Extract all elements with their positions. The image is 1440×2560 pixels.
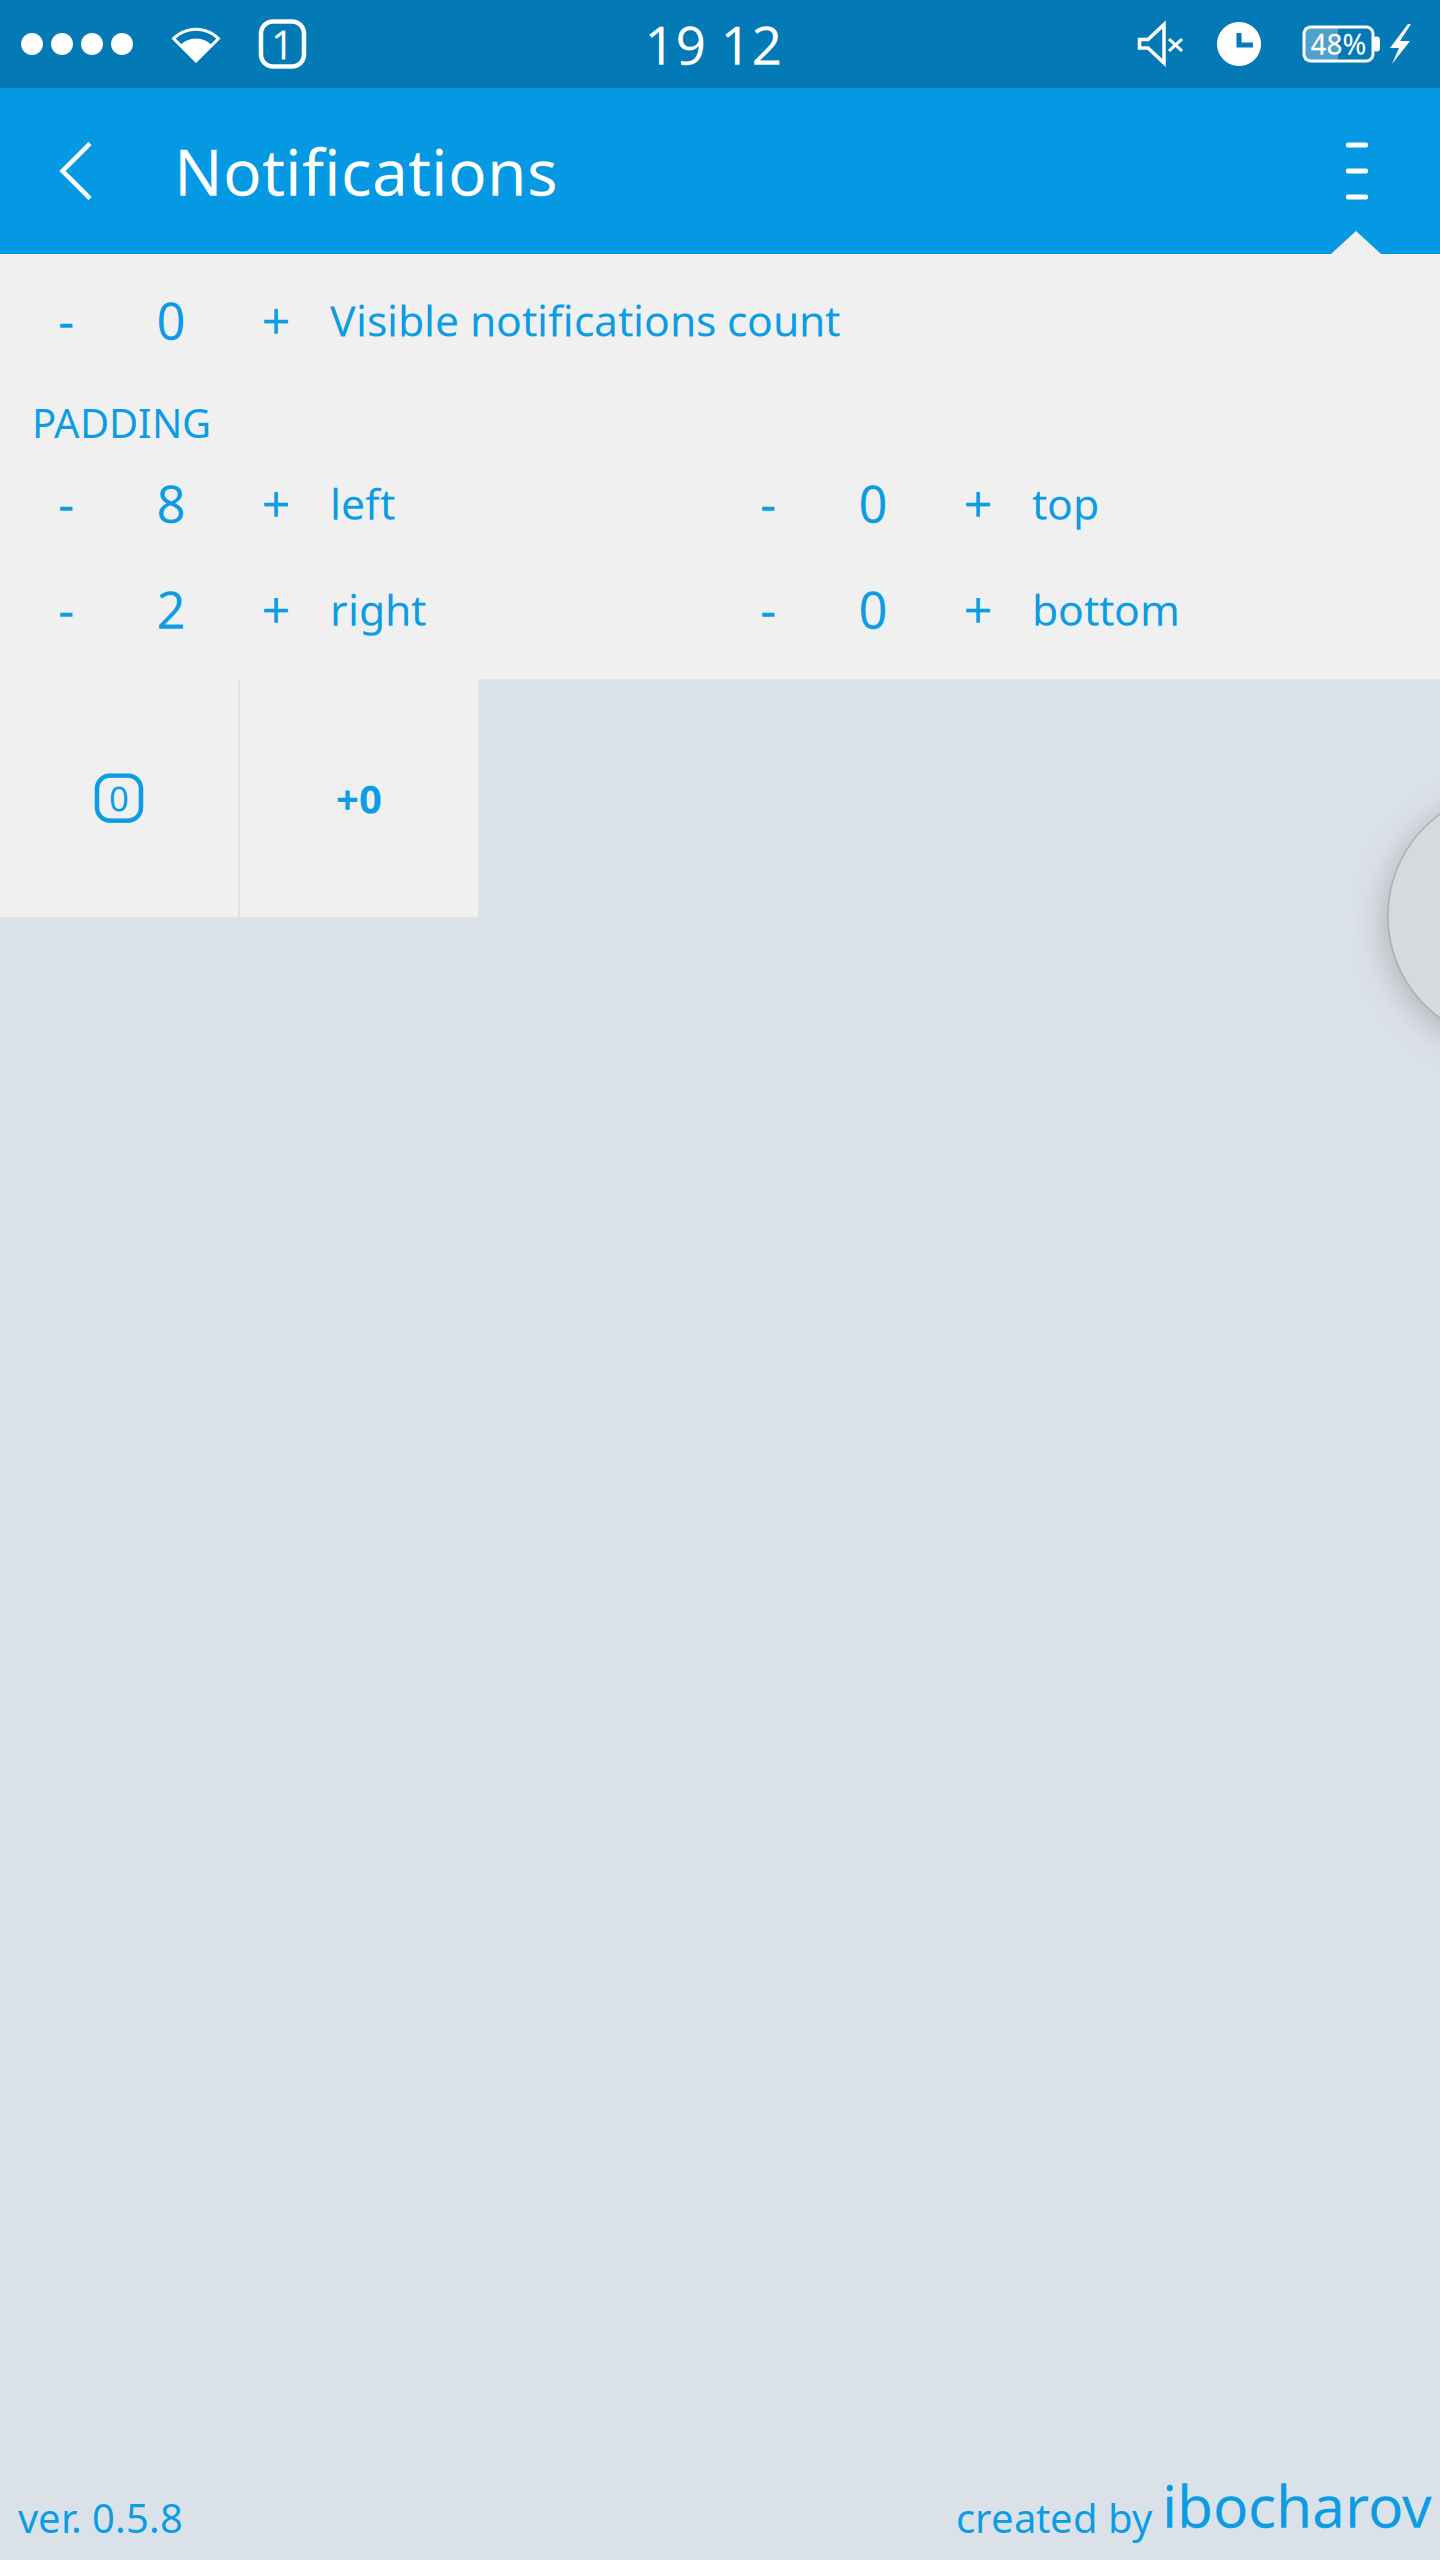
staticText: PADDING [32,396,211,449]
staticText: Visible notifications count [330,292,840,348]
button[interactable]: Decrease bottom [726,561,810,657]
button[interactable]: Decrease right [24,561,108,657]
staticText: ibocharov [1162,2466,1432,2544]
staticText: + [261,575,290,643]
button[interactable]: Back [0,88,152,254]
button[interactable]: 8 [108,455,234,551]
button[interactable]: 0 [810,455,936,551]
staticText: 8 [156,469,185,537]
staticText: 0 [858,575,887,643]
staticText: 1 [271,17,294,70]
staticText: 2 [156,575,185,643]
button[interactable]: Decrease Visible notifications count [24,272,108,368]
staticText: - [760,575,776,643]
button[interactable]: 2 [108,561,234,657]
staticText: 0 [858,469,887,537]
button[interactable]: More options [1298,88,1416,254]
staticText: 0 [109,775,129,821]
button[interactable]: 0 [810,561,936,657]
button[interactable]: Increase Visible notifications count [234,272,318,368]
staticText: left [330,475,395,531]
button[interactable]: Increase right [234,561,318,657]
staticText: - [58,469,74,537]
staticText: ver. 0.5.8 [18,2491,183,2544]
staticText: bottom [1032,581,1180,637]
staticText: + [963,469,992,537]
staticText: top [1032,475,1099,531]
button[interactable]: Decrease left [24,455,108,551]
staticText: 48% [1310,25,1366,63]
staticText: + [261,286,290,354]
staticText: + [261,469,290,537]
button[interactable]: Increase top [936,455,1020,551]
staticText: +0 [336,772,382,825]
button[interactable]: Increase bottom [936,561,1020,657]
button[interactable]: Notification badge preview [0,679,238,917]
button[interactable]: 0 [108,272,234,368]
staticText: 0 [156,286,185,354]
staticText: + [963,575,992,643]
staticText: Notifications [174,128,558,213]
button[interactable]: Decrease top [726,455,810,551]
staticText: - [760,469,776,537]
staticText: right [330,581,426,637]
staticText: 19 12 [644,9,782,79]
button[interactable]: Increase left [234,455,318,551]
staticText: - [58,286,74,354]
staticText: - [58,575,74,643]
staticText: created by [956,2491,1162,2544]
button[interactable]: Overflow count preview [240,679,478,917]
